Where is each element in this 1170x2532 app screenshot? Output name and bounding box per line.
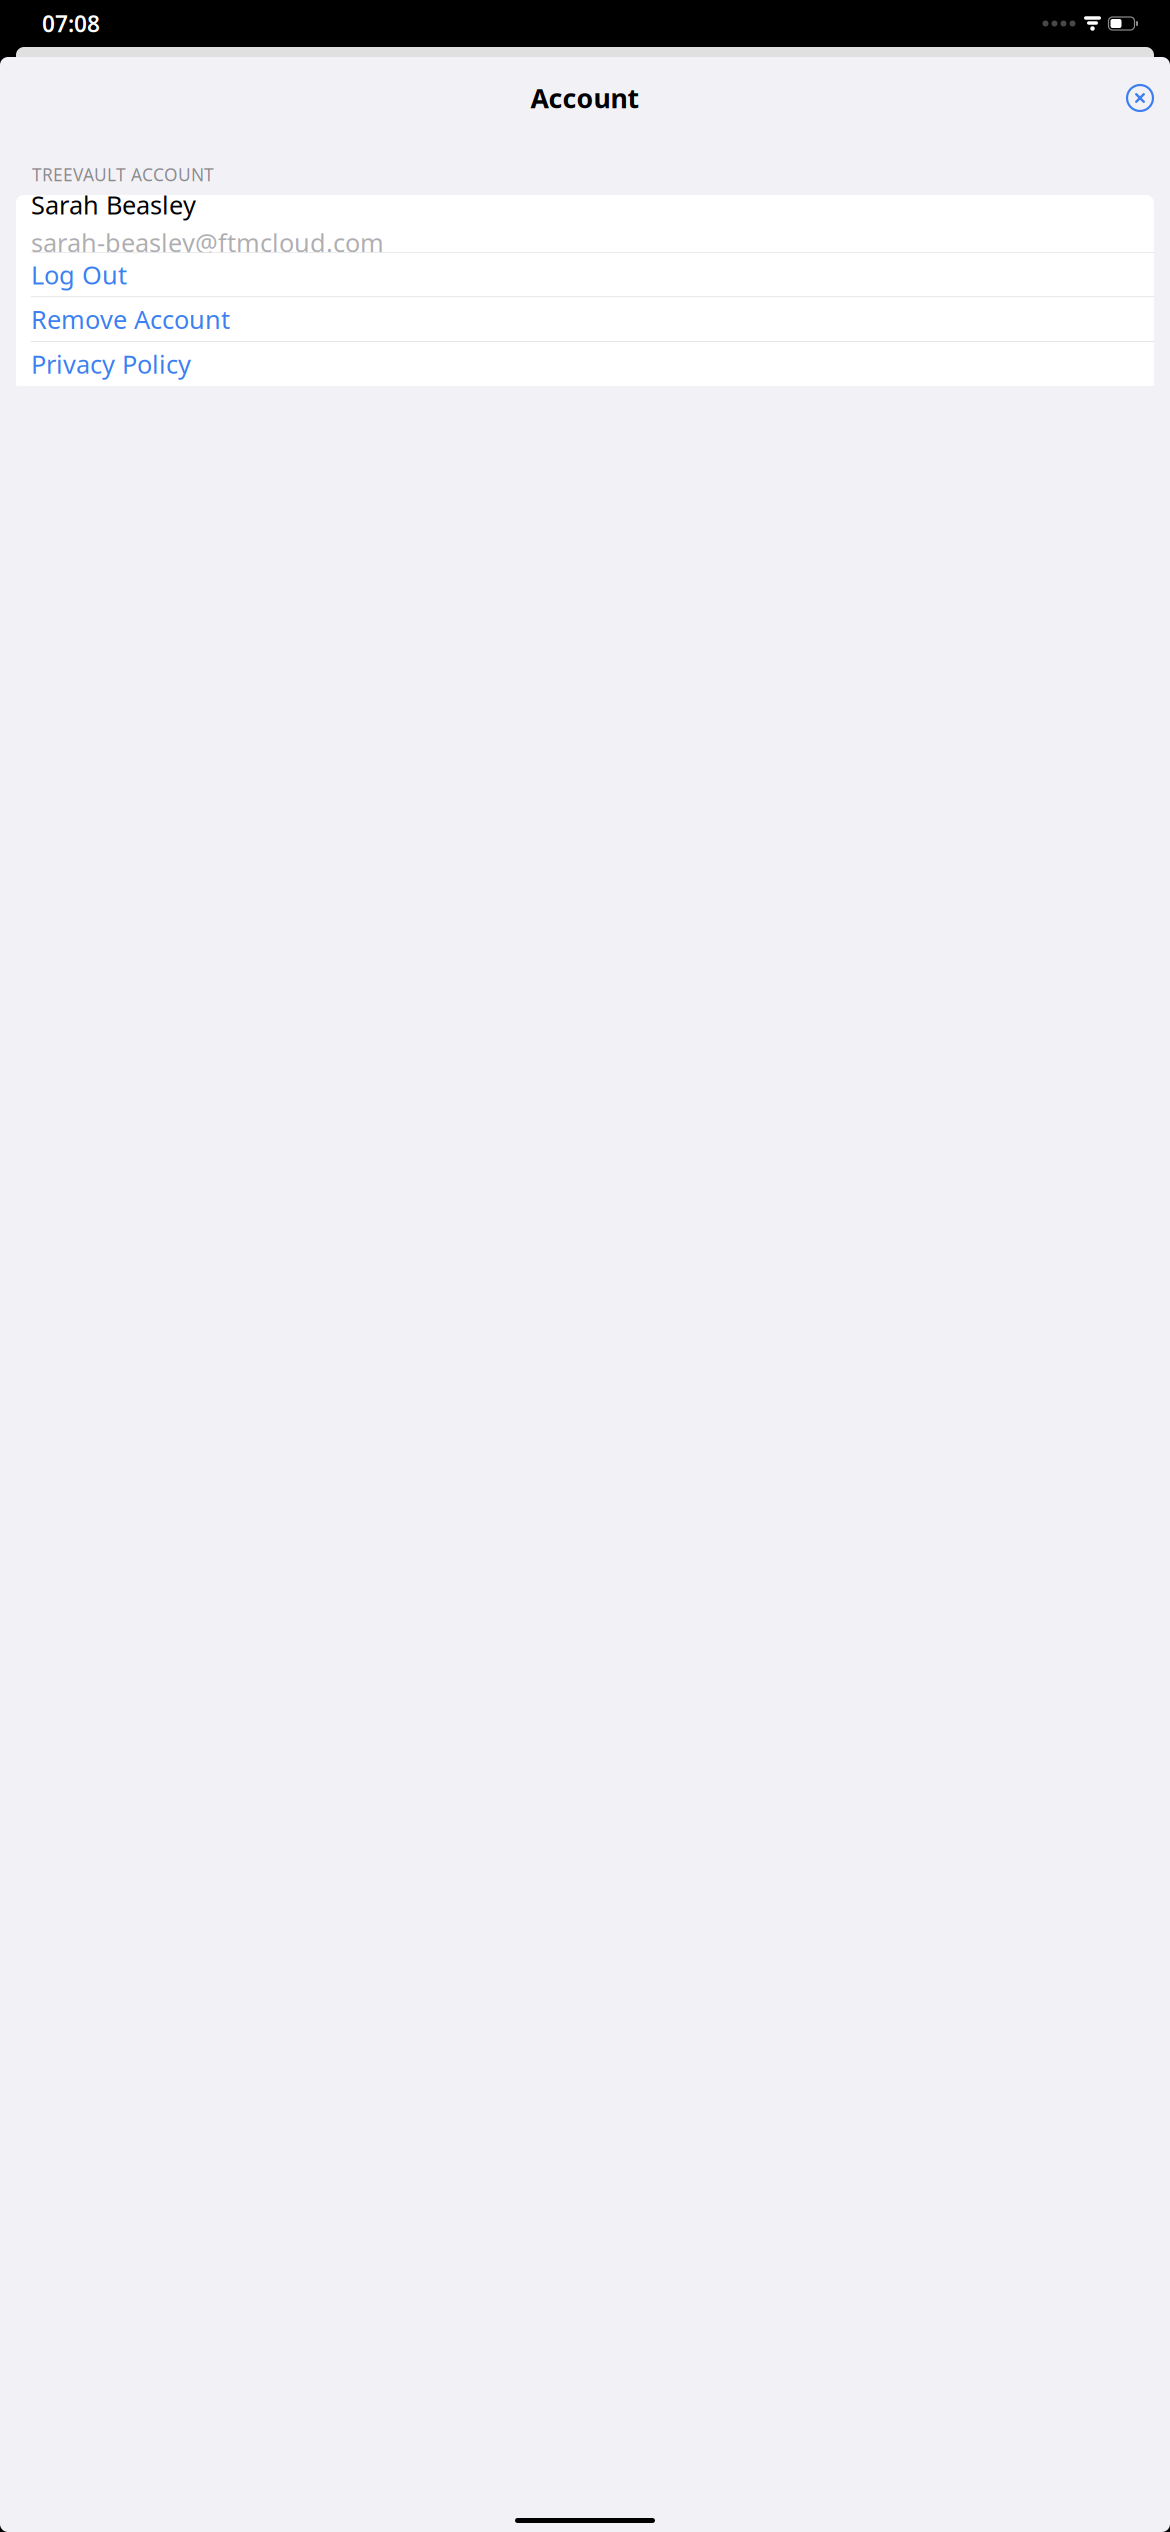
button[interactable]: Remove Account [16,297,1154,341]
staticText: sarah-beasley@ftmcloud.com [31,225,384,259]
button[interactable]: Log Out [16,253,1154,297]
staticText: Privacy Policy [31,347,191,381]
staticText: 07:08 [42,8,100,38]
staticText: Sarah Beasley [31,188,196,221]
staticText: Remove Account [31,302,230,336]
button[interactable]: Privacy Policy [16,342,1154,386]
button[interactable]: Close [1118,76,1162,120]
staticText: TREEVAULT ACCOUNT [32,163,214,186]
staticText: Account [530,80,639,116]
staticText: Log Out [31,258,127,291]
